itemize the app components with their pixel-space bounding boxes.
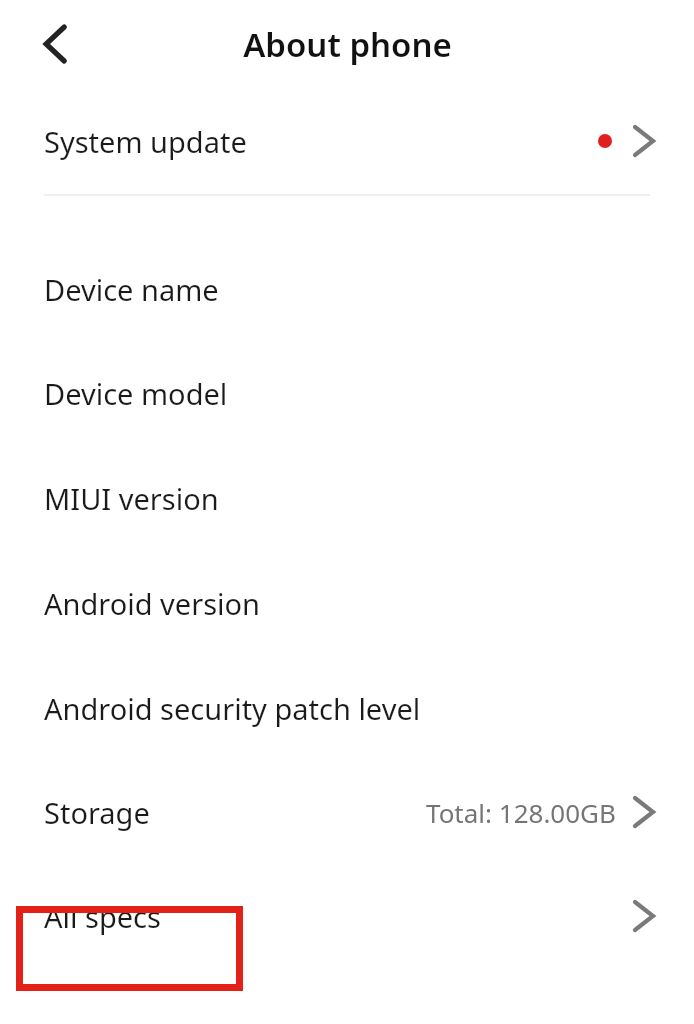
button[interactable]: System update (0, 88, 694, 194)
button[interactable]: Android security patch level (0, 656, 694, 760)
button[interactable]: Android version (0, 551, 694, 656)
staticText: Device name (44, 270, 219, 309)
staticText: System update (44, 122, 247, 161)
staticText: Android security patch level (44, 689, 421, 728)
button[interactable]: MIUI version (0, 445, 694, 551)
staticText: Device model (44, 374, 228, 413)
staticText: MIUI version (44, 479, 219, 518)
staticText: Total: 128.00GB (426, 795, 616, 830)
button[interactable]: Storage (0, 760, 694, 864)
button[interactable]: Back (30, 18, 82, 70)
button[interactable]: All specs (0, 864, 694, 968)
staticText: About phone (243, 22, 452, 67)
staticText: Storage (44, 793, 150, 832)
button[interactable]: Device name (0, 237, 694, 341)
staticText: All specs (44, 897, 161, 936)
button[interactable]: Device model (0, 341, 694, 445)
staticText: Android version (44, 584, 260, 623)
